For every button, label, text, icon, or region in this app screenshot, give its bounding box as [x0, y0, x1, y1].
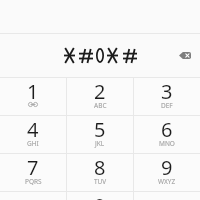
button[interactable]: 5: [67, 116, 133, 153]
staticText: PQRS: [25, 177, 42, 186]
button[interactable]: 0: [67, 192, 133, 200]
button[interactable]: 7: [0, 154, 66, 191]
staticText: 0: [94, 192, 106, 200]
staticText: JKL: [95, 139, 105, 148]
staticText: WXYZ: [158, 177, 176, 186]
staticText: GHI: [27, 139, 39, 148]
staticText: MNO: [159, 139, 175, 148]
staticText: DEF: [161, 101, 173, 110]
staticText: 9: [161, 154, 173, 181]
button[interactable]: 6: [134, 116, 200, 153]
staticText: 5: [94, 116, 106, 143]
staticText: 1: [27, 78, 39, 105]
staticText: 7: [27, 154, 39, 181]
staticText: 2: [94, 78, 106, 105]
button[interactable]: Backspace: [172, 42, 198, 68]
button[interactable]: 4: [0, 116, 66, 153]
button[interactable]: 8: [67, 154, 133, 191]
staticText: ABC: [94, 101, 107, 110]
staticText: 6: [161, 116, 173, 143]
button[interactable]: 9: [134, 154, 200, 191]
staticText: TUV: [94, 177, 107, 186]
button[interactable]: 3: [134, 78, 200, 115]
staticText: 3: [161, 78, 173, 105]
button[interactable]: 1: [0, 78, 66, 115]
button[interactable]: 2: [67, 78, 133, 115]
staticText: 8: [94, 154, 106, 181]
staticText: 4: [27, 116, 39, 143]
